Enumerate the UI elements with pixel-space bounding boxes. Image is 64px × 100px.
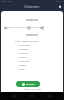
button[interactable]: - buche	[15, 56, 26, 59]
button[interactable]: - edifice	[15, 64, 27, 67]
staticText: - cabanon	[18, 48, 29, 51]
staticText: maison	[1, 32, 63, 37]
staticText: Annonce - Jeu gratuit	[23, 88, 42, 91]
staticText: maison	[1, 17, 63, 22]
staticText: Dictionnaire	[0, 5, 64, 9]
staticText: - batiment	[18, 60, 30, 63]
button[interactable]: Installer	[16, 81, 40, 87]
staticText: Type : adjectif feminin	[15, 40, 39, 43]
staticText: Installer	[26, 83, 35, 86]
staticText: - buche	[18, 56, 26, 59]
staticText: - bourgeois	[18, 44, 31, 47]
button[interactable]: - cabanon	[15, 48, 29, 51]
button[interactable]: Favorite	[27, 26, 31, 30]
staticText: - edifice	[18, 64, 27, 67]
staticText: - logis	[18, 68, 25, 71]
staticText: - mesure	[18, 52, 28, 55]
button[interactable]: Share	[40, 26, 44, 30]
button[interactable]: - mesure	[15, 52, 28, 55]
button[interactable]: Bookmark	[58, 5, 62, 9]
button[interactable]: Pronounce	[4, 26, 8, 30]
button[interactable]: - batiment	[15, 60, 30, 63]
button[interactable]: - bourgeois	[15, 44, 31, 47]
button[interactable]: - logis	[15, 68, 25, 71]
